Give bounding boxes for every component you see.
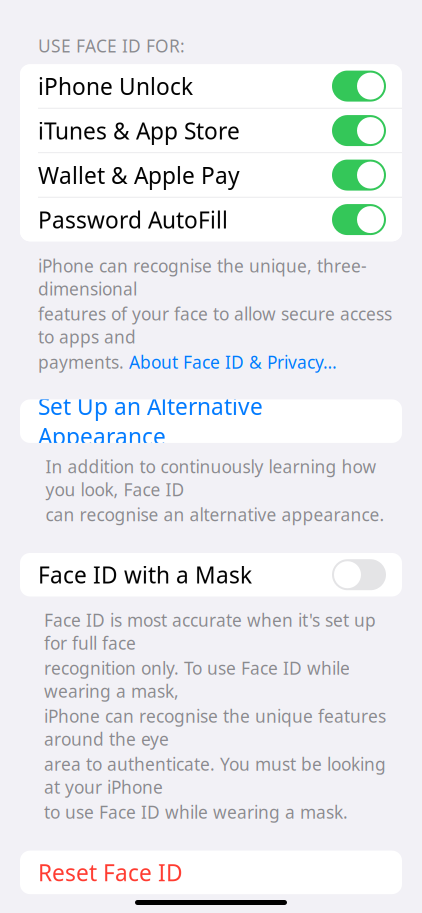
staticText: USE FACE ID FOR: bbox=[38, 34, 185, 57]
staticText: About Face ID & Privacy… bbox=[129, 350, 337, 373]
staticText: Reset Face ID bbox=[38, 857, 183, 887]
button[interactable]: Set Up an Alternative Appearance bbox=[20, 399, 402, 443]
staticText: iPhone can recognise the unique, three-d… bbox=[38, 254, 367, 300]
staticText: iPhone can recognise the unique features… bbox=[44, 704, 386, 750]
button[interactable]: Face ID with a Mask bbox=[20, 553, 402, 596]
staticText: features of your face to allow secure ac… bbox=[38, 302, 392, 348]
button[interactable]: About Face ID & Privacy… bbox=[129, 350, 337, 373]
staticText: Set Up an Alternative Appearance bbox=[38, 391, 263, 451]
button[interactable]: iTunes & App Store bbox=[20, 109, 402, 152]
button[interactable]: Wallet & Apple Pay bbox=[20, 153, 402, 197]
staticText: can recognise an alternative appearance. bbox=[45, 503, 384, 526]
staticText: Password AutoFill bbox=[38, 204, 228, 235]
button[interactable]: iPhone Unlock bbox=[20, 64, 402, 108]
staticText: iPhone Unlock bbox=[38, 71, 193, 101]
staticText: Face ID is most accurate when it's set u… bbox=[44, 608, 376, 654]
staticText: In addition to continuously learning how… bbox=[45, 455, 376, 501]
staticText: area to authenticate. You must be lookin… bbox=[44, 753, 386, 799]
staticText: to use Face ID while wearing a mask. bbox=[44, 801, 348, 824]
button[interactable]: Reset Face ID bbox=[20, 851, 402, 894]
staticText: payments. bbox=[38, 350, 129, 373]
staticText: Face ID with a Mask bbox=[38, 560, 252, 590]
staticText: recognition only. To use Face ID while w… bbox=[44, 656, 350, 702]
staticText: iTunes & App Store bbox=[38, 115, 240, 146]
button[interactable]: Password AutoFill bbox=[20, 198, 402, 241]
staticText: Wallet & Apple Pay bbox=[38, 160, 240, 190]
